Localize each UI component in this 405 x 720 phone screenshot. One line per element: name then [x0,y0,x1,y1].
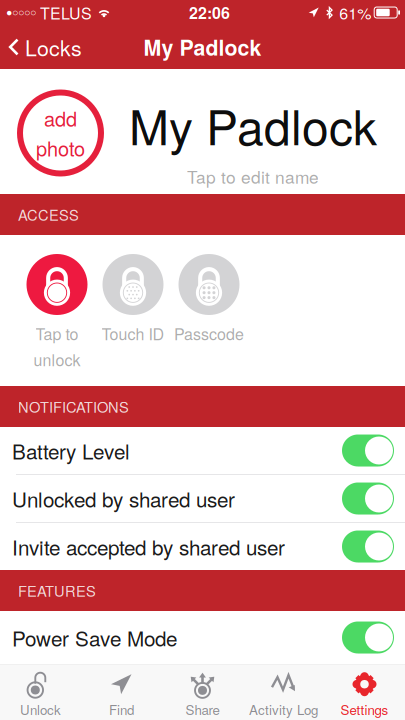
button[interactable]: Passcode [171,254,247,386]
staticText: Tap to [35,322,78,345]
staticText: 22:06 [189,1,230,24]
staticText: photo [36,133,85,162]
staticText: My Padlock [129,90,377,159]
staticText: FEATURES [18,580,96,601]
button[interactable]: Unlocked by shared user [0,475,405,522]
staticText: ACCESS [18,204,79,225]
button[interactable]: Unlock [0,665,81,720]
staticText: Touch ID [101,322,164,345]
button[interactable]: Invite accepted by shared user [0,523,405,570]
staticText: Locks [25,32,82,62]
button[interactable]: Activity Log [243,665,324,720]
button[interactable]: Share [162,665,243,720]
button[interactable]: Battery Level [0,427,405,474]
staticText: Share [185,700,219,719]
staticText: Tap to edit name [187,164,319,189]
button[interactable]: Locks [0,25,92,69]
staticText: Invite accepted by shared user [12,532,285,561]
button[interactable]: Touch ID [95,254,171,386]
staticText: Battery Level [12,436,130,465]
staticText: Unlock [20,700,61,719]
staticText: TELUS [36,1,92,24]
staticText: Passcode [174,322,244,345]
staticText: Power Save Mode [12,623,177,652]
staticText: ●○○○○ [6,6,36,18]
staticText: NOTIFICATIONS [18,396,129,417]
button[interactable]: add [20,92,101,173]
staticText: Find [109,700,134,719]
button[interactable]: Tap to [19,254,95,386]
staticText: unlock [33,348,80,371]
button[interactable]: Find [81,665,162,720]
staticText: Unlocked by shared user [12,484,235,513]
staticText: Settings [340,700,388,719]
staticText: add [44,104,77,132]
button[interactable]: Settings [324,665,405,720]
staticText: 61% [339,1,371,24]
button[interactable]: Power Save Mode [0,611,405,664]
staticText: My Padlock [143,32,261,62]
staticText: Activity Log [249,700,318,719]
